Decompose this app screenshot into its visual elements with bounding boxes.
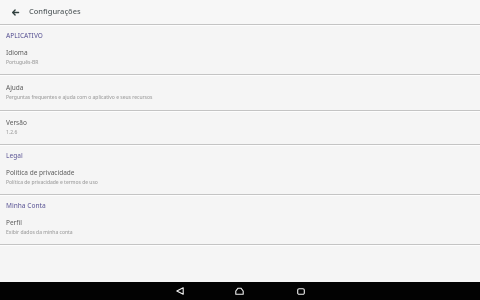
- button[interactable]: Versão: [0, 112, 480, 144]
- staticText: Perfil: [6, 218, 22, 227]
- button[interactable]: Voltar: [4, 0, 27, 24]
- button[interactable]: Política de privacidade: [0, 160, 480, 194]
- staticText: Perguntas frequentes e ajuda com o aplic…: [6, 94, 153, 101]
- button[interactable]: Recent apps: [286, 288, 315, 300]
- staticText: APLICATIVO: [6, 31, 43, 40]
- staticText: Português-BR: [6, 59, 39, 66]
- button[interactable]: Home: [225, 287, 254, 300]
- button[interactable]: Back: [165, 287, 194, 300]
- button[interactable]: Ajuda: [0, 76, 480, 110]
- staticText: Idioma: [6, 48, 28, 57]
- staticText: Minha Conta: [6, 201, 46, 210]
- button[interactable]: Idioma: [0, 40, 480, 74]
- button[interactable]: Perfil: [0, 210, 480, 244]
- staticText: Configurações: [29, 6, 81, 16]
- staticText: Política de privacidade: [6, 168, 75, 177]
- staticText: Política de privacidade e termos de uso: [6, 179, 98, 186]
- staticText: 1.2.6: [6, 129, 18, 136]
- staticText: Ajuda: [6, 83, 24, 92]
- staticText: Versão: [6, 118, 27, 127]
- staticText: Legal: [6, 151, 23, 160]
- staticText: Exibir dados da minha conta: [6, 229, 73, 236]
